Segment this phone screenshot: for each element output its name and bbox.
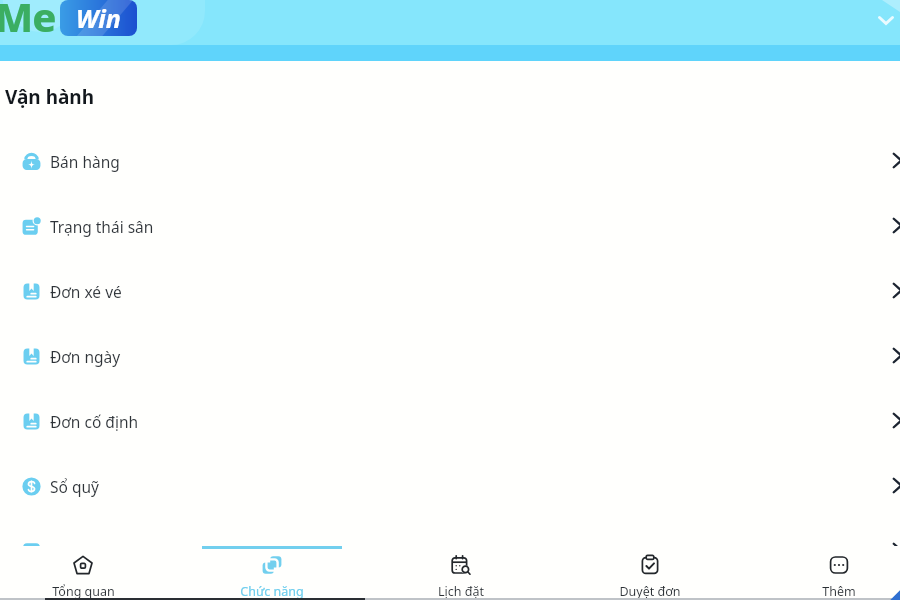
staticText: Đơn cố định	[50, 411, 139, 432]
button[interactable]: Đơn ngày	[0, 325, 900, 390]
staticText: Me	[0, 0, 56, 34]
button[interactable]: Expand menu	[869, 3, 900, 37]
staticText: Duyệt đơn	[619, 583, 681, 600]
staticText: Đơn xé vé	[50, 281, 122, 302]
staticText: Tổng quan	[52, 583, 115, 600]
button[interactable]: Đơn xé vé	[0, 260, 900, 325]
staticText: Chức năng	[240, 583, 304, 600]
staticText: Lịch đặt	[438, 583, 484, 600]
staticText: Bán hàng	[50, 151, 120, 172]
button[interactable]: Bán hàng	[0, 130, 900, 195]
staticText: Đơn ngày	[50, 346, 121, 367]
button[interactable]: Thêm	[744, 546, 900, 600]
staticText: Vận hành	[5, 84, 95, 110]
button[interactable]: Tổng quan	[0, 546, 177, 600]
staticText: Trạng thái sân	[50, 216, 154, 237]
staticText: Sổ quỹ	[50, 476, 99, 497]
button[interactable]: Sổ quỹ	[0, 455, 900, 520]
button[interactable]: Lịch đặt	[366, 546, 555, 600]
button[interactable]: Chức năng	[177, 546, 366, 600]
button[interactable]: Trạng thái sân	[0, 195, 900, 260]
button[interactable]: Đơn cố định	[0, 390, 900, 455]
staticText: Win	[76, 1, 121, 35]
button[interactable]: Báo cáo	[0, 520, 900, 585]
staticText: Báo cáo	[50, 541, 108, 562]
button[interactable]: Duyệt đơn	[555, 546, 744, 600]
staticText: Thêm	[822, 583, 856, 600]
